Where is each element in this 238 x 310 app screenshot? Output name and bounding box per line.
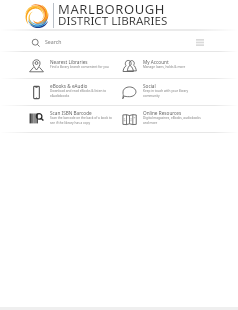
button[interactable]: My Account (119, 52, 238, 79)
staticText: Scan ISBN Barcode (50, 110, 92, 116)
button[interactable]: Nearest Libraries (0, 52, 119, 79)
button[interactable]: Online Resources (119, 106, 238, 133)
staticText: Digital magazines, eBooks, audiobooks an… (143, 116, 205, 125)
staticText: MARLBOROUGH (58, 0, 166, 18)
button[interactable]: Social (119, 79, 238, 106)
staticText: Find a library branch convenient for you (50, 65, 109, 69)
staticText: Online Resources (143, 110, 182, 116)
staticText: Manage loans, holds & more (143, 65, 186, 69)
button[interactable]: Search (0, 31, 238, 52)
staticText: eBooks & eAudio (50, 83, 88, 89)
button[interactable]: eBooks & eAudio (0, 79, 119, 106)
staticText: Download and read eBooks & listen to eAu… (50, 89, 113, 98)
staticText: Social (143, 83, 156, 89)
button[interactable]: Menu (194, 36, 206, 48)
staticText: My Account (143, 59, 169, 65)
staticText: Scan the barcode on the back of a book t… (50, 116, 113, 125)
staticText: Nearest Libraries (50, 59, 88, 65)
staticText: DISTRICT LIBRARIES (58, 13, 168, 29)
staticText: Search (45, 38, 62, 45)
staticText: Keep in touch with your library communit… (143, 89, 205, 98)
button[interactable]: Scan ISBN Barcode (0, 106, 119, 133)
